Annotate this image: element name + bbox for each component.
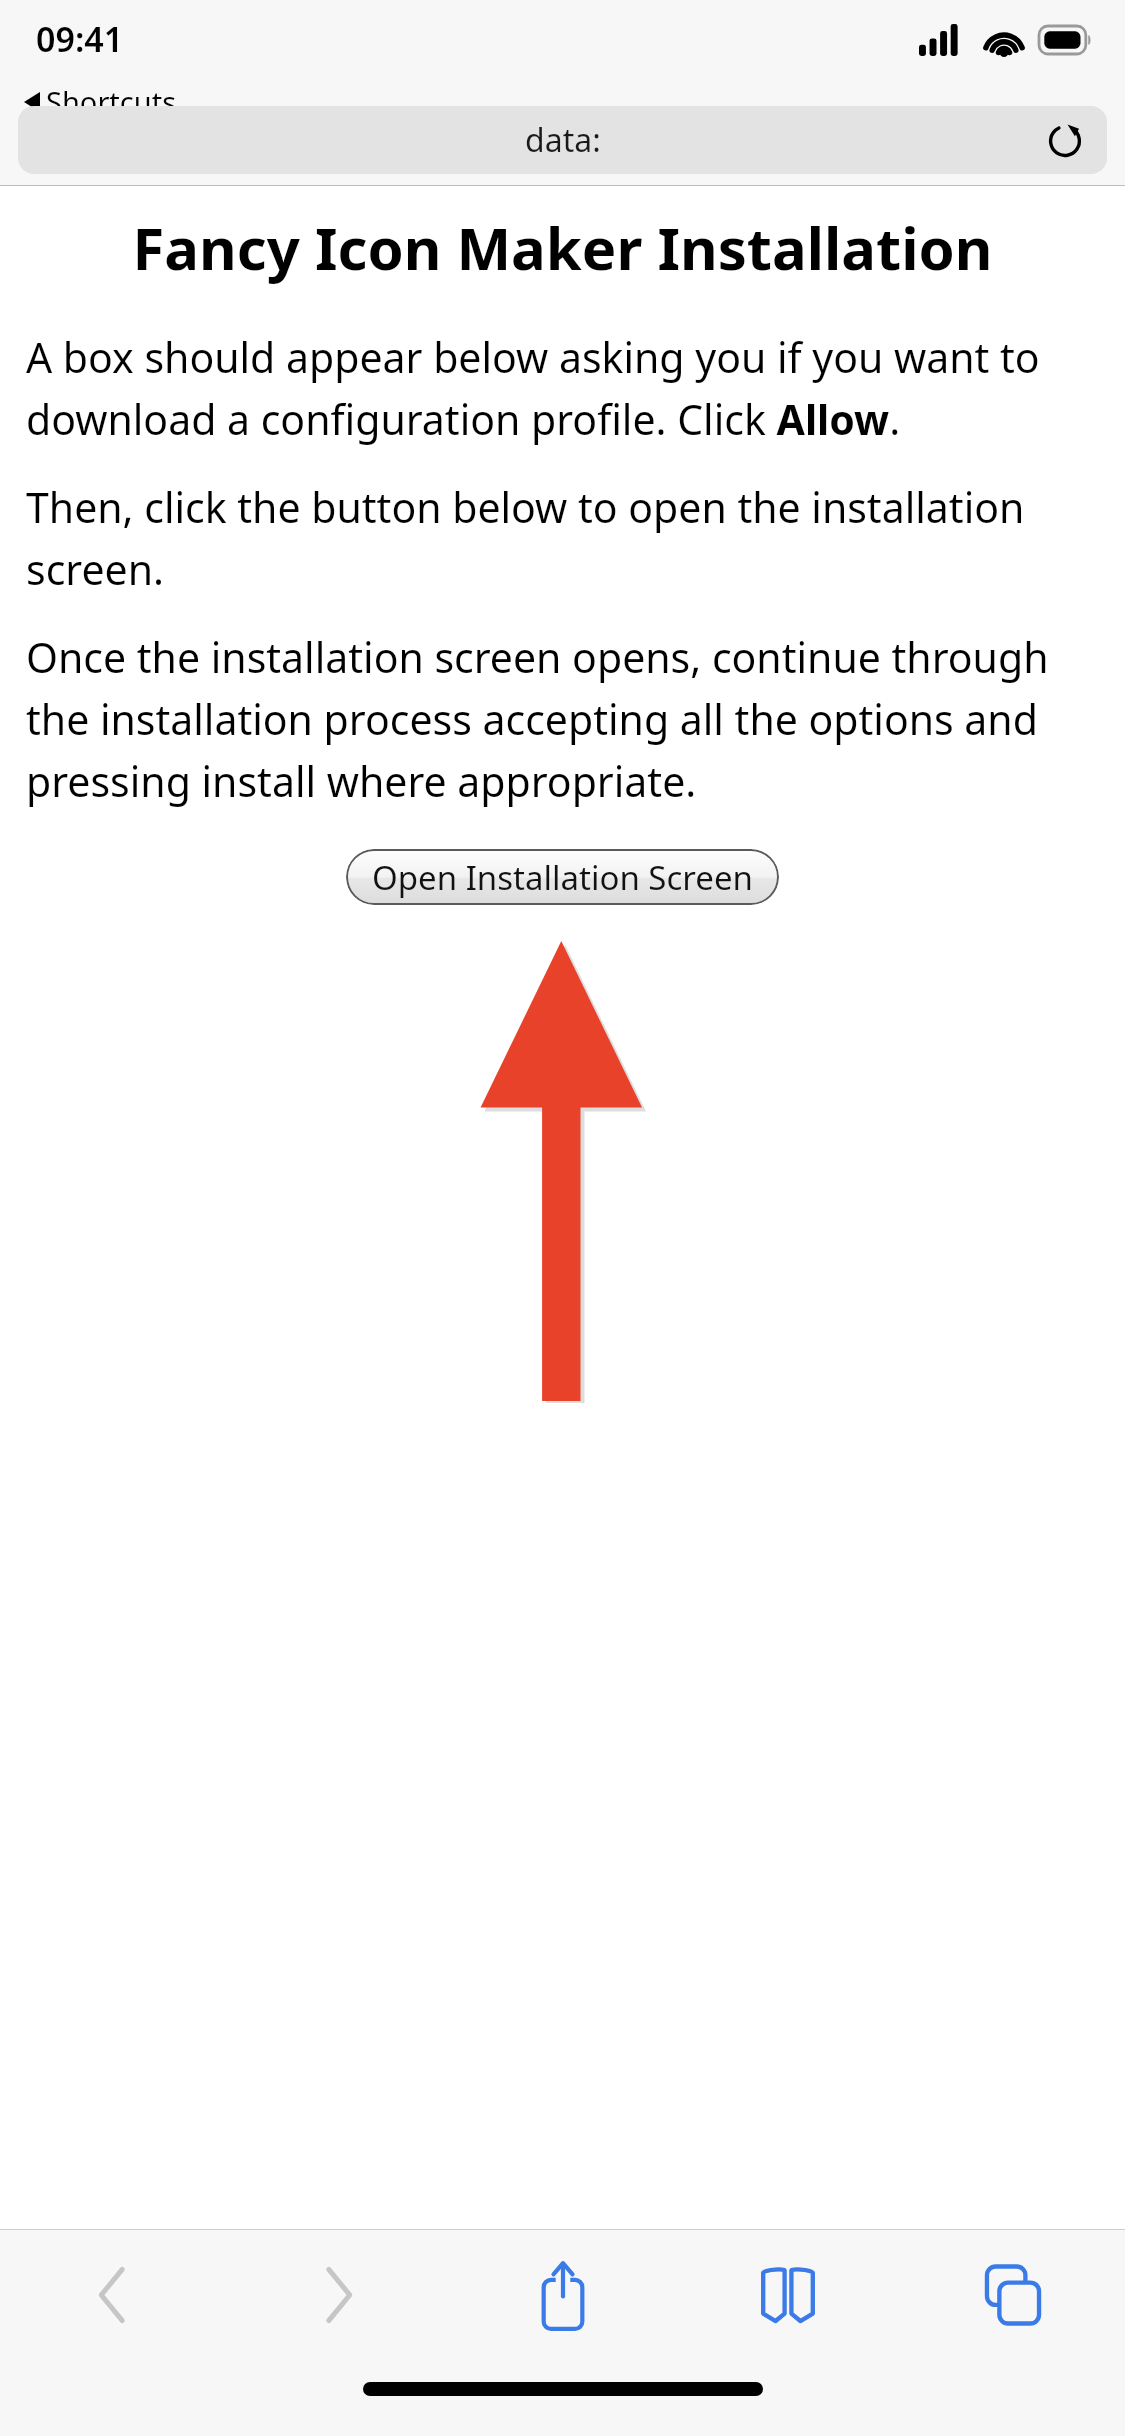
button[interactable]: Reload	[1041, 116, 1089, 164]
staticText: Once the installation screen opens, cont…	[26, 629, 1099, 809]
staticText: Then, click the button below to open the…	[26, 479, 1099, 597]
staticText: data:	[525, 118, 601, 162]
button[interactable]: Open Installation Screen	[346, 849, 779, 905]
staticText: Open Installation Screen	[372, 855, 753, 900]
staticText: Fancy Icon Maker Installation	[26, 208, 1099, 287]
button[interactable]: Bookmarks	[675, 2230, 900, 2360]
button[interactable]: data:	[18, 106, 1107, 174]
button[interactable]: Shortcuts	[20, 78, 181, 125]
staticText: A box should appear below asking you if …	[26, 329, 1099, 447]
button[interactable]: Tabs	[900, 2230, 1125, 2360]
staticText: Shortcuts	[46, 82, 177, 121]
button[interactable]: Share	[450, 2230, 675, 2360]
button[interactable]: Back	[0, 2230, 225, 2360]
button[interactable]: Forward	[225, 2230, 450, 2360]
staticText: 09:41	[36, 16, 124, 62]
